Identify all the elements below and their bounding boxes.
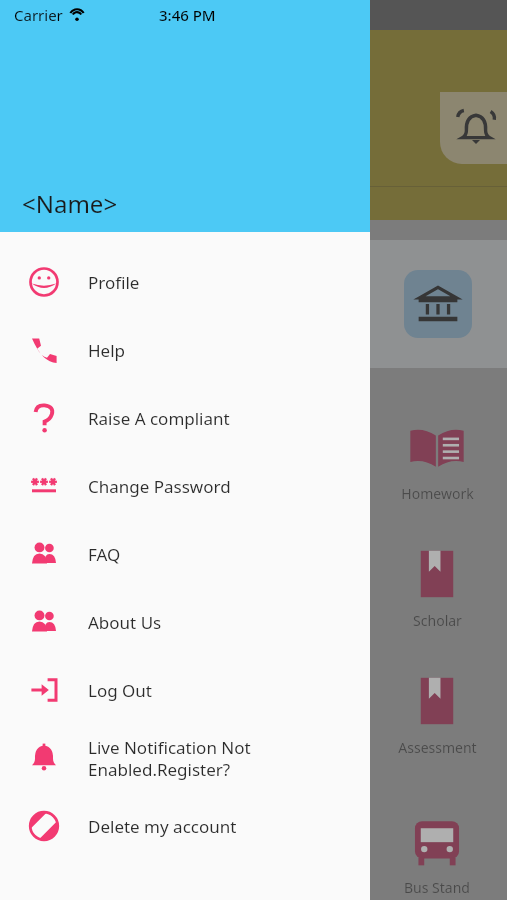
button[interactable]: FAQ: [0, 520, 370, 588]
staticText: Assessment: [398, 738, 477, 757]
button[interactable]: Delete my account: [0, 792, 370, 860]
button[interactable]: About Us: [0, 588, 370, 656]
staticText: Raise A compliant: [88, 407, 230, 430]
staticText: Homework: [401, 484, 474, 503]
staticText: Change Password: [88, 475, 231, 498]
staticText: FAQ: [88, 543, 121, 566]
button[interactable]: Notifications: [440, 92, 507, 164]
button[interactable]: Homework: [382, 418, 492, 503]
button[interactable]: Raise A compliant: [0, 384, 370, 452]
button[interactable]: Assessment: [382, 672, 492, 757]
staticText: Delete my account: [88, 815, 237, 838]
button[interactable]: Change Password: [0, 452, 370, 520]
staticText: Scholar: [413, 611, 462, 630]
staticText: About Us: [88, 611, 162, 634]
staticText: <Name>: [22, 187, 118, 220]
staticText: 3:46 PM: [159, 5, 216, 25]
staticText: Help: [88, 339, 126, 362]
button[interactable]: Profile: [0, 248, 370, 316]
button[interactable]: [330, 240, 507, 368]
button[interactable]: Scholar: [382, 545, 492, 630]
staticText: Carrier: [14, 5, 63, 25]
button[interactable]: Bus Stand: [382, 812, 492, 897]
button[interactable]: Live Notification Not Enabled.Register?: [0, 724, 370, 792]
staticText: Live Notification Not Enabled.Register?: [88, 736, 251, 781]
button[interactable]: Log Out: [0, 656, 370, 724]
staticText: Profile: [88, 271, 140, 294]
staticText: Log Out: [88, 679, 152, 702]
button[interactable]: Help: [0, 316, 370, 384]
staticText: Bus Stand: [404, 878, 470, 897]
